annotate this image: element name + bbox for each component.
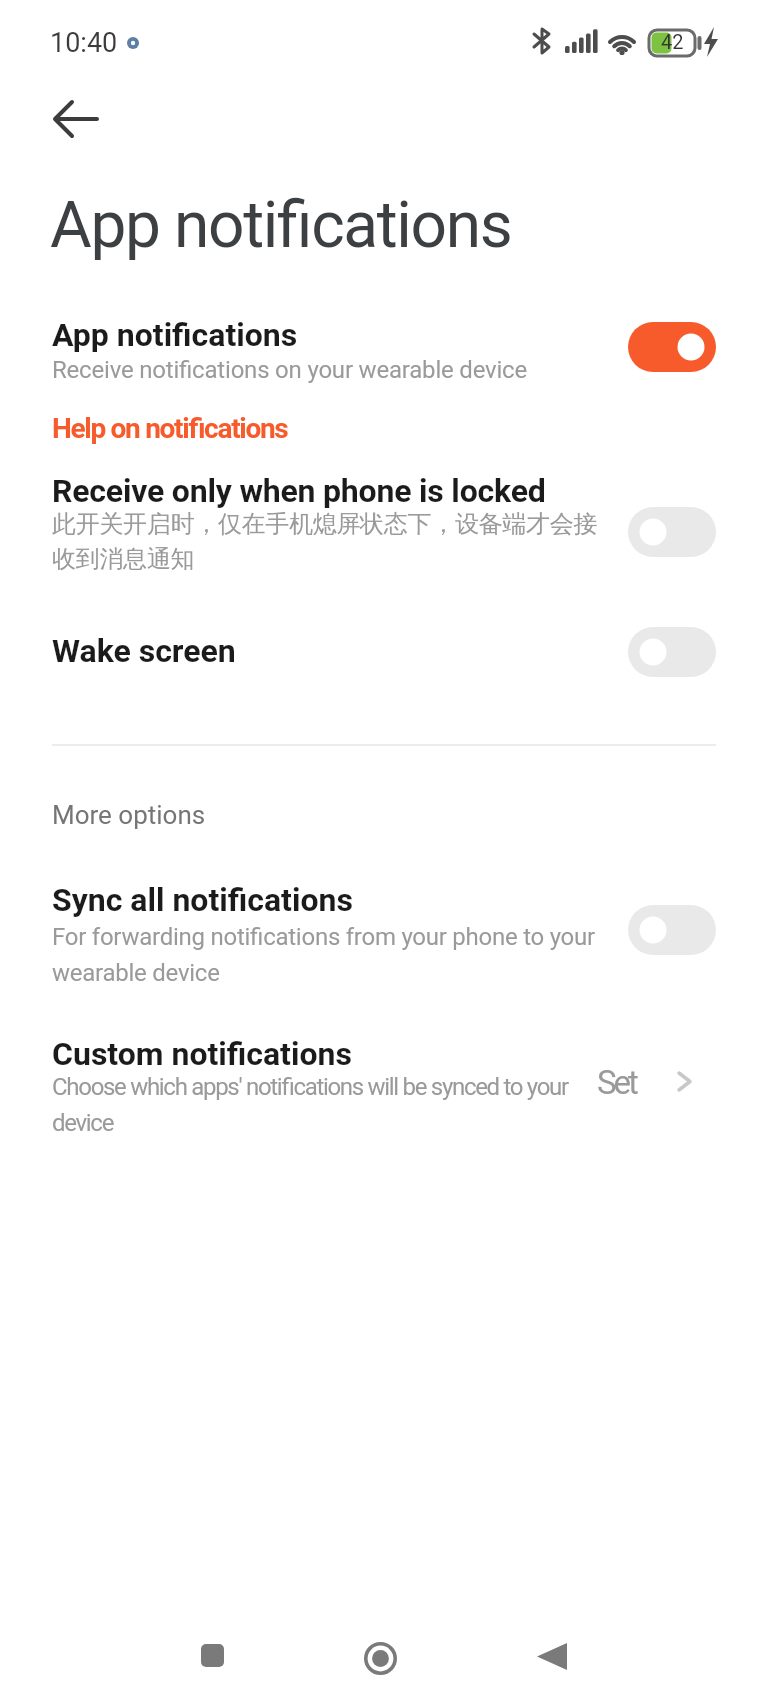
button[interactable]	[0, 1025, 768, 1145]
button[interactable]	[0, 405, 420, 460]
button[interactable]	[186, 1628, 238, 1680]
button[interactable]	[628, 627, 716, 677]
button[interactable]	[628, 905, 716, 955]
staticText: Sync all notifications	[52, 881, 353, 919]
staticText: For forwarding notifications from your p…	[52, 923, 595, 987]
staticText: Custom notifications	[52, 1035, 352, 1073]
staticText: 此开关开启时，仅在手机熄屏状态下，设备端才会接 收到消息通知	[52, 509, 598, 574]
button[interactable]	[36, 88, 116, 150]
button[interactable]	[524, 1628, 576, 1680]
staticText: Choose which apps' notifications will be…	[52, 1073, 568, 1137]
button[interactable]	[0, 305, 768, 395]
staticText: Set	[597, 1063, 636, 1102]
button[interactable]	[0, 618, 768, 688]
button[interactable]	[628, 322, 716, 372]
staticText: Wake screen	[52, 632, 236, 670]
staticText: More options	[52, 800, 206, 830]
staticText: Help on notifications	[52, 412, 288, 445]
button[interactable]	[0, 465, 768, 585]
staticText: Receive notifications on your wearable d…	[52, 356, 527, 384]
staticText: Receive only when phone is locked	[52, 472, 546, 510]
staticText: 10:40	[50, 27, 118, 59]
button[interactable]	[628, 507, 716, 557]
staticText: App notifications	[52, 316, 298, 354]
staticText: App notifications	[50, 188, 512, 263]
staticText: 42	[661, 30, 684, 53]
button[interactable]	[354, 1628, 406, 1680]
button[interactable]	[0, 868, 768, 993]
